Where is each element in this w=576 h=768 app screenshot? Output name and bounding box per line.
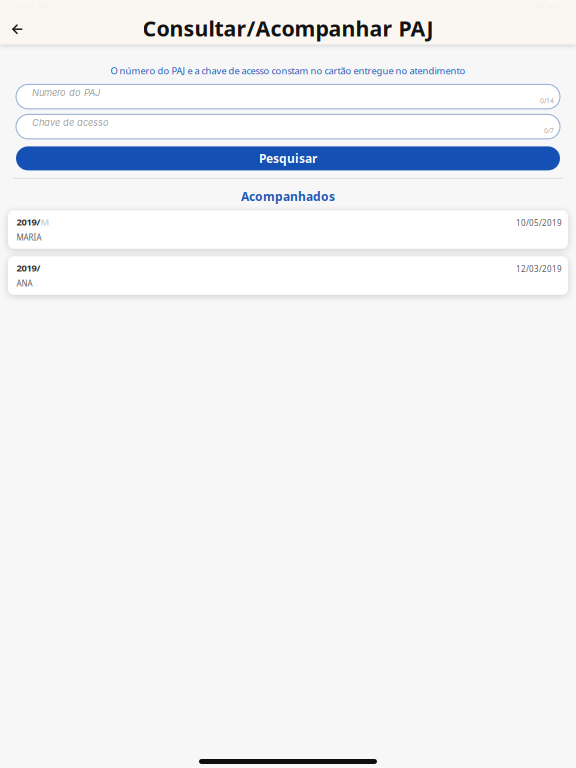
button[interactable]: Back	[0, 18, 34, 38]
staticText: Pesquisar	[259, 150, 317, 166]
staticText: M	[40, 216, 49, 228]
staticText: 0/14	[540, 96, 554, 105]
staticText: 0/7	[544, 126, 554, 135]
staticText: Consultar/Acompanhar PAJ	[142, 14, 433, 42]
button[interactable]: 2019/	[8, 210, 568, 249]
staticText: ANA	[16, 278, 34, 289]
staticText: 2019/	[16, 262, 40, 274]
staticText: O número do PAJ e a chave de acesso cons…	[110, 64, 465, 77]
staticText: 12/03/2019	[516, 264, 562, 274]
staticText: 2019/	[16, 216, 40, 228]
staticText: Acompanhados	[241, 188, 335, 204]
staticText: MARIA	[16, 232, 41, 243]
button[interactable]: Pesquisar	[16, 146, 560, 170]
button[interactable]: 2019/	[8, 256, 568, 295]
staticText: .	[34, 278, 38, 289]
staticText: Chave de acesso	[32, 117, 109, 128]
staticText: Número do PAJ	[32, 87, 100, 98]
staticText: 10/05/2019	[516, 218, 562, 228]
